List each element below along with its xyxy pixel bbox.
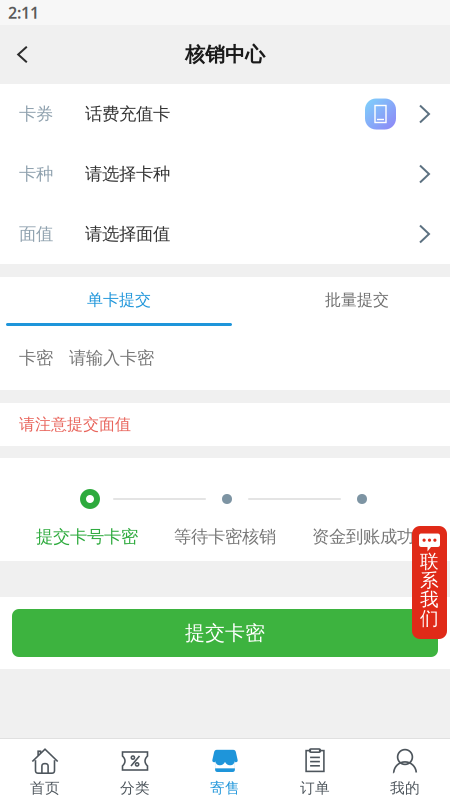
staticText: 请选择面值 — [85, 223, 170, 245]
staticText: 我的 — [390, 779, 420, 797]
staticText: 分类 — [120, 779, 150, 797]
button[interactable]: 联系我们 — [412, 526, 447, 639]
button[interactable]: 订单 — [270, 738, 360, 800]
staticText: 请输入卡密 — [69, 347, 154, 369]
staticText: 我 — [420, 588, 439, 611]
staticText: 核销中心 — [185, 42, 265, 67]
staticText: 面值 — [19, 223, 53, 245]
staticText: 卡券 — [19, 103, 53, 125]
staticText: 提交卡号卡密 — [36, 526, 138, 547]
button[interactable]: 寄售 — [180, 738, 270, 800]
button[interactable]: Back — [0, 25, 42, 83]
staticText: 单卡提交 — [87, 290, 151, 310]
button[interactable]: 卡券 — [0, 84, 450, 144]
staticText: 首页 — [30, 779, 60, 797]
staticText: 系 — [420, 569, 439, 592]
staticText: 提交卡密 — [185, 621, 265, 645]
staticText: 卡种 — [19, 163, 53, 185]
staticText: 2:11 — [8, 2, 39, 23]
staticText: 们 — [420, 607, 439, 630]
staticText: 订单 — [300, 779, 330, 797]
button[interactable]: 分类 — [90, 738, 180, 800]
button[interactable]: 面值 — [0, 204, 450, 264]
staticText: 联 — [420, 550, 439, 573]
staticText: 资金到账成功 — [312, 526, 414, 547]
staticText: 等待卡密核销 — [174, 526, 276, 547]
button[interactable]: 首页 — [0, 738, 90, 800]
staticText: 寄售 — [210, 779, 240, 797]
button[interactable]: 卡种 — [0, 144, 450, 204]
staticText: 话费充值卡 — [85, 103, 170, 125]
button[interactable]: 我的 — [360, 738, 450, 800]
staticText: 批量提交 — [325, 290, 389, 310]
staticText: 请选择卡种 — [85, 163, 170, 185]
button[interactable]: 批量提交 — [238, 277, 450, 323]
button[interactable]: 单卡提交 — [0, 277, 238, 323]
staticText: 请注意提交面值 — [19, 415, 131, 434]
staticText: 卡密 — [19, 347, 53, 369]
button[interactable]: 提交卡密 — [12, 609, 438, 657]
